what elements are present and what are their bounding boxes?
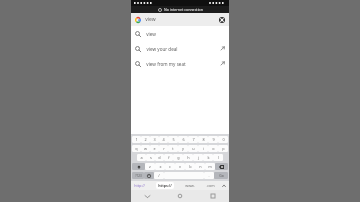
button[interactable]: v [175,163,185,170]
button[interactable]: 1 [132,136,141,143]
staticText: s [150,155,152,160]
button[interactable]: Backspace [215,163,228,170]
staticText: 5 [172,137,175,142]
staticText: y [182,146,184,151]
button[interactable]: j [193,154,203,161]
button[interactable]: m [205,163,215,170]
staticText: . [208,173,210,178]
button[interactable]: / [154,172,164,179]
button[interactable]: Shift [132,163,145,170]
button[interactable]: 6 [178,136,188,143]
button[interactable]: u [188,145,198,152]
button[interactable]: b [185,163,195,170]
button[interactable]: w [141,145,150,152]
staticText: t [172,146,174,151]
staticText: 3 [153,137,156,142]
button[interactable]: i [198,145,208,152]
button[interactable]: e [150,145,159,152]
button[interactable]: 8 [198,136,208,143]
staticText: 0 [222,137,225,142]
button[interactable]: https:// [156,182,174,189]
button[interactable]: p [218,145,228,152]
button[interactable]: www. [185,183,195,188]
button[interactable]: a [137,154,146,161]
staticText: h [187,155,190,160]
staticText: view from my seat [146,61,186,67]
button[interactable]: 3 [150,136,159,143]
staticText: v [179,164,181,169]
staticText: view [145,16,156,23]
staticText: 9 [212,137,215,142]
staticText: 4 [162,137,165,142]
staticText: p [222,146,225,151]
button[interactable]: z [145,163,155,170]
button[interactable]: Clear [219,17,225,23]
button[interactable]: 0 [218,136,228,143]
staticText: 6 [182,137,185,142]
button[interactable]: More [222,184,226,188]
button[interactable]: f [164,154,173,161]
button[interactable]: g [173,154,183,161]
button[interactable]: t [168,145,178,152]
staticText: o [212,146,215,151]
staticText: i [203,146,204,151]
staticText: view [146,31,156,37]
button[interactable]: ?123 [132,172,144,179]
staticText: https:// [158,183,172,188]
staticText: x [159,164,162,169]
staticText: ?123 [135,174,142,178]
staticText: z [149,164,151,169]
button[interactable]: o [208,145,218,152]
button[interactable]: view from my seat [131,56,229,71]
button[interactable]: . [204,172,214,179]
button[interactable]: x [155,163,165,170]
button[interactable]: s [146,154,155,161]
button[interactable]: r [159,145,168,152]
button[interactable]: Emoji [144,172,154,179]
button[interactable]: h [183,154,193,161]
button[interactable]: 9 [208,136,218,143]
button[interactable]: 7 [188,136,198,143]
button[interactable]: n [195,163,205,170]
staticText: www. [185,183,195,188]
staticText: c [169,164,171,169]
staticText: f [168,155,170,160]
button[interactable]: view [131,26,229,41]
staticText: q [135,146,138,151]
staticText: / [158,173,160,178]
button[interactable]: Go [214,172,228,179]
staticText: 1 [135,137,138,142]
staticText: 7 [192,137,195,142]
staticText: g [177,155,180,160]
button[interactable]: .com [206,183,215,188]
staticText: k [207,155,210,160]
button[interactable]: c [165,163,175,170]
staticText: .com [206,183,215,188]
button[interactable]: d [155,154,164,161]
button[interactable]: Home [163,190,196,202]
button[interactable]: Recents [196,190,229,202]
button[interactable]: http:// [134,183,145,188]
button[interactable]: 5 [168,136,178,143]
button[interactable]: Back [131,190,163,202]
staticText: view your deal [146,46,178,52]
staticText: e [153,146,156,151]
button[interactable]: y [178,145,188,152]
staticText: d [158,155,161,160]
staticText: a [140,155,143,160]
button[interactable]: 4 [159,136,168,143]
staticText: l [218,155,219,160]
staticText: No internet connection [164,7,203,12]
button[interactable]: view your deal [131,41,229,56]
button[interactable]: l [213,154,223,161]
staticText: n [199,164,202,169]
staticText: j [198,155,199,160]
button[interactable]: view [131,13,229,26]
button[interactable]: 2 [141,136,150,143]
staticText: 8 [202,137,205,142]
button[interactable]: q [132,145,141,152]
staticText: r [163,146,165,151]
button[interactable]: k [203,154,213,161]
staticText: b [189,164,192,169]
